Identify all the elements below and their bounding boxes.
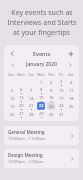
staticText: Events <box>33 50 51 57</box>
button[interactable]: Back <box>8 49 17 58</box>
staticText: 17 <box>59 96 64 101</box>
button[interactable]: 18 <box>67 94 75 102</box>
button[interactable]: 10 <box>57 86 65 94</box>
staticText: General Meeting <box>8 129 45 135</box>
staticText: Mon <box>17 72 25 77</box>
staticText: 19 <box>10 104 15 109</box>
staticText: 6 <box>20 87 23 92</box>
staticText: 4 <box>70 80 73 85</box>
staticText: at your fingertips <box>13 28 70 38</box>
button[interactable]: 29 <box>37 110 45 118</box>
staticText: Design Meeting <box>8 152 43 158</box>
button[interactable]: 7 <box>27 86 35 94</box>
button[interactable]: 2 <box>47 78 55 86</box>
staticText: 8 <box>40 87 43 92</box>
staticText: 23 <box>49 104 54 109</box>
button[interactable]: 15 <box>37 94 45 102</box>
button[interactable]: Next month <box>66 61 74 69</box>
button[interactable]: 6 <box>17 86 25 94</box>
staticText: 24 <box>59 103 64 108</box>
staticText: 14 <box>29 96 34 101</box>
button[interactable]: 11 <box>67 86 75 94</box>
staticText: 30 <box>49 112 54 117</box>
button[interactable]: 24 <box>57 102 65 110</box>
staticText: 5 <box>11 88 14 93</box>
staticText: 12 <box>10 96 15 101</box>
staticText: 9 <box>50 88 53 93</box>
button[interactable]: 12 <box>8 94 16 102</box>
button[interactable]: Add event <box>66 49 75 58</box>
staticText: Key events such as <box>11 8 73 18</box>
staticText: 7 <box>30 88 33 93</box>
button[interactable]: 8 <box>37 86 45 94</box>
staticText: 10:00am - 11:00am <box>8 136 46 142</box>
button[interactable]: 25 <box>67 102 75 110</box>
staticText: Fri <box>59 72 64 77</box>
staticText: 15 <box>39 95 44 100</box>
button[interactable]: 30 <box>47 110 55 118</box>
button[interactable]: 13 <box>17 94 25 102</box>
staticText: 13 <box>19 95 24 100</box>
staticText: 28 <box>29 112 34 117</box>
staticText: 26 <box>10 112 15 117</box>
staticText: 11 <box>69 88 74 93</box>
button[interactable]: 17 <box>57 94 65 102</box>
button[interactable]: 26 <box>8 110 16 118</box>
staticText: 22 <box>39 103 44 108</box>
staticText: Wed <box>37 72 45 77</box>
button[interactable]: 28 <box>27 110 35 118</box>
staticText: 2 <box>50 80 53 85</box>
staticText: 10 <box>59 88 64 93</box>
staticText: Sat <box>68 72 74 77</box>
staticText: Thu <box>48 72 55 77</box>
button[interactable]: 4 <box>67 78 75 86</box>
staticText: 3 <box>60 79 63 84</box>
staticText: 1 <box>40 80 43 85</box>
button[interactable]: 21 <box>27 102 35 110</box>
staticText: Sun <box>8 72 15 77</box>
button[interactable]: 3 <box>57 78 65 86</box>
staticText: 12:00pm - 1:00pm <box>8 159 44 165</box>
button[interactable]: 31 <box>57 110 65 118</box>
button[interactable]: 9 <box>47 86 55 94</box>
button[interactable]: General Meeting <box>4 126 79 145</box>
staticText: 29 <box>39 111 44 116</box>
button[interactable]: 20 <box>17 102 25 110</box>
button[interactable]: 1 <box>37 78 45 86</box>
button[interactable]: 23 <box>47 102 55 110</box>
staticText: 27 <box>19 111 24 116</box>
button[interactable]: 5 <box>8 86 16 94</box>
staticText: Tue <box>28 72 35 77</box>
staticText: 20 <box>19 103 24 108</box>
staticText: 21 <box>29 103 34 108</box>
staticText: 31 <box>59 112 64 117</box>
button[interactable]: Design Meeting <box>4 149 79 168</box>
button[interactable]: 14 <box>27 94 35 102</box>
staticText: 16 <box>49 95 54 100</box>
button[interactable]: 27 <box>17 110 25 118</box>
button[interactable]: 22 <box>37 102 45 110</box>
staticText: January 2020 <box>26 61 57 68</box>
staticText: 18 <box>69 96 74 101</box>
staticText: Interviews and Starts <box>7 18 77 28</box>
button[interactable]: 16 <box>47 94 55 102</box>
button[interactable]: Previous month <box>9 61 17 69</box>
button[interactable]: 19 <box>8 102 16 110</box>
staticText: 25 <box>69 104 74 109</box>
